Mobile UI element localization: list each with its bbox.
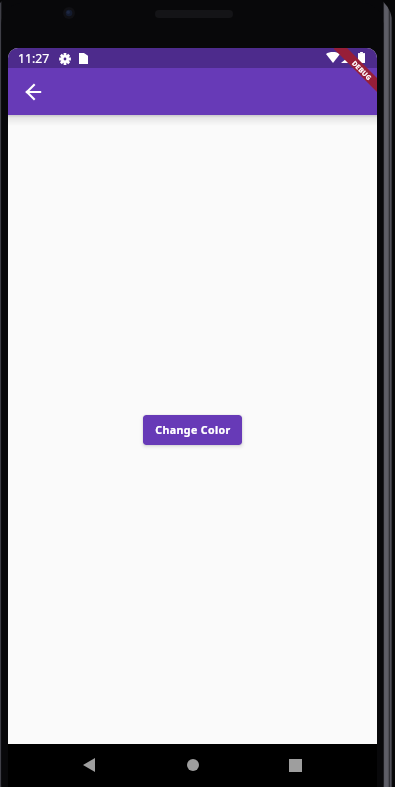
button[interactable]: Change Color	[143, 415, 242, 445]
button[interactable]: Back	[14, 73, 52, 111]
button[interactable]: Recent apps	[282, 752, 308, 778]
staticText: DEBUG	[350, 59, 374, 83]
button[interactable]: Home	[180, 752, 206, 778]
staticText: 11:27	[18, 50, 50, 67]
button[interactable]: Back	[76, 752, 102, 778]
staticText: Change Color	[155, 423, 231, 437]
